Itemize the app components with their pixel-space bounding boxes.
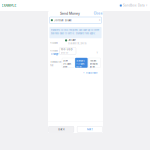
button[interactable]: Sandbox Data	[120, 0, 150, 11]
button[interactable]: Instant	[88, 58, 101, 68]
staticText: Amount	[50, 49, 58, 52]
staticText: x	[99, 19, 100, 21]
staticText: Jordan Blake	[54, 19, 72, 22]
staticText: Minutes	[89, 63, 97, 65]
staticText: v	[96, 51, 97, 54]
staticText: + Add a note	[83, 72, 97, 74]
button[interactable]: Expand amount details	[95, 50, 98, 55]
staticText: Standard	[76, 59, 84, 62]
staticText: Sandbox Data	[123, 4, 145, 7]
staticText: Transfers to this recipient can take up …	[51, 29, 99, 35]
staticText: Balance $1,204.55	[68, 42, 86, 45]
button[interactable]: Standard	[75, 58, 87, 68]
staticText: Transaction	[50, 60, 61, 63]
staticText: $9.99	[89, 66, 94, 69]
staticText: $100.00	[61, 51, 68, 54]
staticText: Back	[58, 128, 64, 131]
button[interactable]: + Add a note	[82, 71, 98, 75]
staticText: Send Money	[60, 11, 80, 15]
button[interactable]: EXAMPLE	[0, 0, 19, 11]
button[interactable]: Close	[92, 10, 104, 16]
staticText: 100 USD	[61, 48, 73, 51]
button[interactable]: Next	[77, 126, 102, 132]
staticText: Close	[94, 12, 103, 15]
staticText: fee	[50, 64, 53, 67]
button[interactable]: Jordan Blake	[49, 17, 102, 23]
staticText: Next	[87, 128, 93, 131]
staticText: Free	[63, 66, 67, 69]
button[interactable]: Back	[48, 126, 74, 132]
staticText: Slow	[63, 59, 68, 62]
staticText: Instant	[89, 59, 96, 62]
button[interactable]: 100 USD	[59, 47, 76, 54]
staticText: v	[146, 4, 147, 7]
staticText: EXAMPLE	[1, 4, 16, 7]
button[interactable]: Slow	[62, 58, 74, 68]
staticText: JBlake	[68, 39, 75, 42]
staticText: $4.99	[76, 66, 81, 69]
button[interactable]: Change	[51, 53, 58, 56]
staticText: Change	[51, 53, 58, 56]
staticText: Account	[50, 41, 58, 44]
staticText: 1-2 days	[76, 63, 84, 65]
staticText: 3-5 days	[63, 63, 71, 65]
